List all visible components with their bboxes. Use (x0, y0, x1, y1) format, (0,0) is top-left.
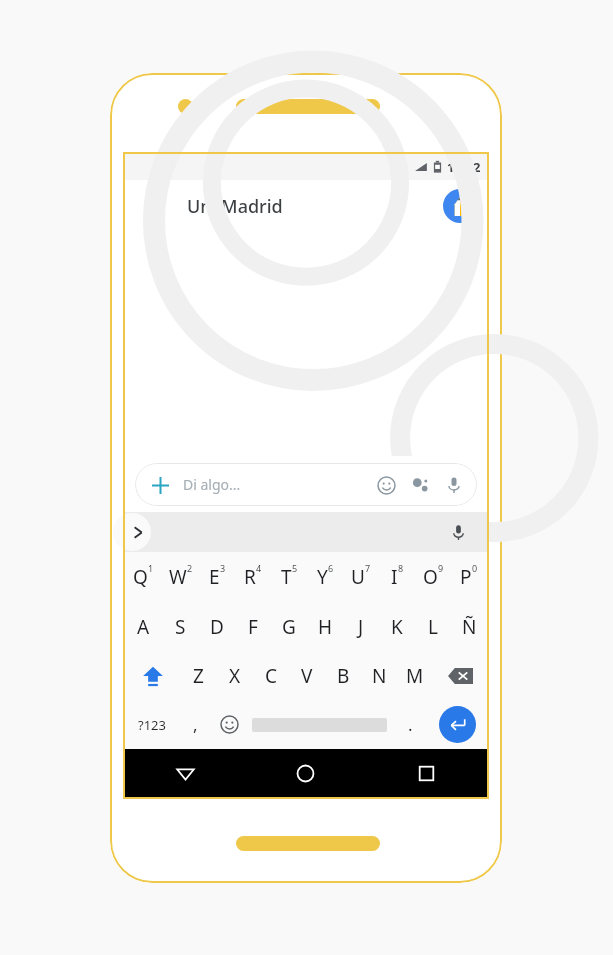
staticText: B (337, 663, 350, 689)
staticText: 9 (438, 562, 444, 574)
staticText: Z (193, 663, 204, 689)
button[interactable]: Recents (366, 749, 487, 797)
button[interactable]: Expand (113, 513, 151, 551)
staticText: H (318, 614, 333, 640)
button[interactable]: W (162, 552, 199, 602)
button[interactable]: Enter (439, 706, 476, 743)
staticText: U (351, 564, 365, 590)
button[interactable]: O (415, 552, 451, 602)
staticText: W (169, 564, 187, 590)
staticText: ?123 (138, 716, 166, 734)
staticText: 11:42 (447, 158, 481, 176)
button[interactable]: N (361, 651, 397, 700)
staticText: Ñ (462, 614, 477, 640)
button[interactable]: Assistant (403, 468, 437, 502)
button[interactable]: Add (145, 470, 175, 500)
staticText: Uni Madrid (187, 194, 283, 219)
button[interactable]: I (379, 552, 415, 602)
staticText: R (244, 564, 256, 590)
button[interactable]: A (125, 602, 162, 651)
staticText: , (193, 713, 198, 736)
button[interactable]: V (289, 651, 325, 700)
button[interactable]: B (325, 651, 361, 700)
button[interactable]: ?123 (125, 700, 178, 749)
staticText: S (175, 614, 186, 640)
staticText: F (248, 614, 258, 640)
staticText: E (209, 564, 220, 590)
staticText: 8 (398, 562, 404, 574)
staticText: I (391, 564, 398, 590)
button[interactable]: Shift (125, 651, 180, 700)
button[interactable]: Backspace (433, 651, 487, 700)
staticText: L (428, 614, 438, 640)
button[interactable]: Back (135, 186, 175, 226)
button[interactable]: Voice (437, 468, 471, 502)
button[interactable]: Emoji (369, 468, 403, 502)
staticText: N (372, 663, 387, 689)
staticText: 4 (256, 562, 262, 574)
button[interactable]: Y (307, 552, 343, 602)
staticText: 2 (187, 562, 193, 574)
button[interactable]: U (343, 552, 379, 602)
staticText: K (391, 614, 403, 640)
button[interactable]: F (235, 602, 271, 651)
button[interactable]: P (451, 552, 487, 602)
button[interactable]: X (217, 651, 253, 700)
staticText: Q (133, 564, 148, 590)
button[interactable]: S (162, 602, 199, 651)
staticText: T (281, 564, 292, 590)
button[interactable]: Add (135, 463, 477, 506)
staticText: 0 (472, 562, 478, 574)
staticText: 1 (148, 562, 154, 574)
button[interactable]: G (271, 602, 307, 651)
button[interactable]: C (253, 651, 289, 700)
button[interactable]: Voice input (443, 517, 473, 547)
staticText: P (460, 564, 472, 590)
button[interactable]: M (397, 651, 433, 700)
button[interactable]: Ñ (451, 602, 487, 651)
staticText: M (406, 663, 424, 689)
button[interactable]: H (307, 602, 343, 651)
staticText: Di algo... (183, 475, 241, 494)
staticText: O (423, 564, 438, 590)
button[interactable]: R (235, 552, 271, 602)
staticText: . (408, 713, 413, 736)
button[interactable]: L (415, 602, 451, 651)
staticText: X (229, 663, 241, 689)
button[interactable]: J (343, 602, 379, 651)
button[interactable]: T (271, 552, 307, 602)
staticText: 5 (292, 562, 298, 574)
staticText: Y (317, 564, 328, 590)
staticText: 6 (328, 562, 334, 574)
button[interactable]: Space (246, 700, 393, 749)
button[interactable]: Profile (443, 189, 477, 223)
staticText: C (265, 663, 278, 689)
button[interactable]: . (393, 700, 427, 749)
button[interactable]: Back (125, 749, 245, 797)
button[interactable]: E (199, 552, 235, 602)
staticText: J (358, 614, 364, 640)
staticText: A (137, 614, 150, 640)
button[interactable]: Q (125, 552, 162, 602)
button[interactable]: D (199, 602, 235, 651)
staticText: D (210, 614, 224, 640)
staticText: G (282, 614, 296, 640)
button[interactable]: Z (180, 651, 217, 700)
button[interactable]: , (178, 700, 212, 749)
button[interactable]: Emoji (212, 700, 246, 749)
staticText: 3 (220, 562, 226, 574)
button[interactable]: K (379, 602, 415, 651)
staticText: V (301, 663, 313, 689)
staticText: 7 (365, 562, 371, 574)
button[interactable]: Home (245, 749, 366, 797)
